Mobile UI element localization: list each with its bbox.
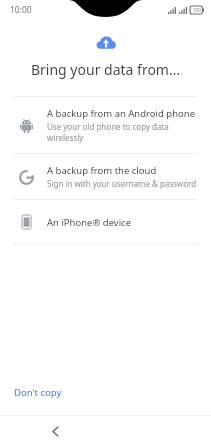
staticText: An iPhone® device (47, 216, 132, 229)
staticText: Sign in with your username & password (47, 178, 197, 189)
button[interactable]: An iPhone® device (0, 200, 211, 244)
button[interactable]: Back (44, 420, 66, 442)
button[interactable]: A backup from an Android phone (0, 97, 211, 153)
staticText: Don't copy (14, 386, 62, 399)
button[interactable]: Don't copy (8, 382, 68, 403)
staticText: A backup from the cloud (47, 164, 157, 177)
staticText: 100 (193, 7, 201, 13)
staticText: 10:00 (10, 4, 32, 16)
staticText: Use your old phone to copy data wireless… (47, 121, 197, 143)
staticText: Bring your data from… (0, 60, 211, 79)
staticText: A backup from an Android phone (47, 107, 196, 120)
button[interactable]: A backup from the cloud (0, 154, 211, 199)
